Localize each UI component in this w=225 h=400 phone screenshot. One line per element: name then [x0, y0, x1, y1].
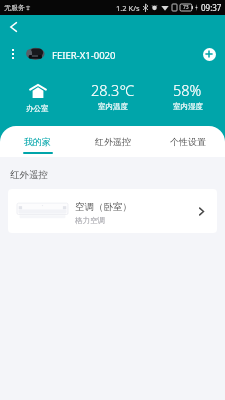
button[interactable]: 个性设置: [150, 126, 225, 157]
staticText: 空调（卧室）: [75, 201, 132, 213]
staticText: 73: [183, 4, 189, 11]
button[interactable]: Back: [3, 17, 23, 37]
staticText: 09:37: [201, 2, 222, 13]
staticText: 红外遥控: [95, 136, 131, 147]
button[interactable]: 办公室: [0, 80, 75, 113]
staticText: 无服务: [4, 3, 25, 12]
staticText: 格力空调: [75, 216, 105, 225]
staticText: 我的家: [24, 136, 51, 147]
staticText: 室内湿度: [173, 102, 203, 111]
staticText: FEIER-X1-0020: [52, 49, 116, 62]
staticText: 28.3℃: [91, 80, 134, 100]
staticText: 个性设置: [170, 136, 206, 147]
button[interactable]: More options: [3, 44, 23, 64]
button[interactable]: 红外遥控: [75, 126, 150, 157]
staticText: 室内温度: [98, 102, 128, 111]
staticText: 办公室: [26, 104, 49, 113]
staticText: 1.2 K/s: [116, 3, 140, 13]
staticText: 58%: [173, 80, 202, 100]
staticText: 红外遥控: [10, 169, 48, 181]
button[interactable]: 我的家: [0, 126, 75, 157]
button[interactable]: 空调（卧室）: [8, 189, 217, 233]
button[interactable]: Add device: [200, 45, 218, 63]
